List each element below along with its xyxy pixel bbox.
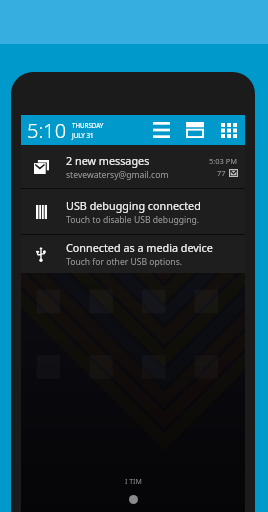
staticText: JULY 31	[72, 131, 94, 139]
staticText: Connected as a media device	[66, 240, 213, 255]
staticText: I TIM	[125, 477, 142, 487]
staticText: 2 new messages	[66, 153, 150, 168]
button[interactable]: 2 new messages	[21, 145, 245, 188]
staticText: THURSDAY	[72, 121, 104, 129]
staticText: Touch for other USB options.	[66, 256, 183, 268]
button[interactable]: All apps	[212, 115, 245, 145]
button[interactable]: Connected as a media device	[21, 235, 245, 273]
staticText: 5:10	[27, 117, 67, 144]
staticText: stevewatersy@gmail.com	[66, 169, 169, 181]
button[interactable]: USB debugging connected	[21, 189, 245, 234]
button[interactable]: Notifications list	[144, 115, 178, 145]
staticText: Touch to disable USB debugging.	[66, 214, 200, 226]
staticText: 5:03 PM	[209, 156, 238, 166]
button[interactable]: Close notification shade	[129, 495, 138, 504]
staticText: USB debugging connected	[66, 198, 201, 213]
button[interactable]: Recent apps	[178, 115, 212, 145]
staticText: 77	[217, 168, 226, 178]
